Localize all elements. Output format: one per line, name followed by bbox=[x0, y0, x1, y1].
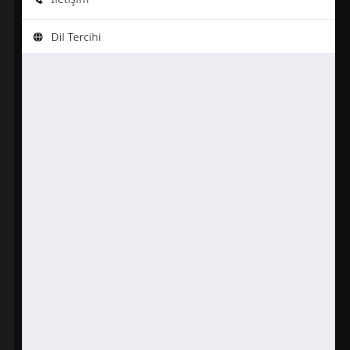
other: Language preference bbox=[33, 32, 43, 42]
button[interactable]: Contact bbox=[22, 0, 335, 19]
staticText: İletişim bbox=[51, 0, 89, 6]
other: Contact bbox=[33, 0, 43, 4]
button[interactable]: Language preference bbox=[22, 20, 335, 53]
staticText: Dil Tercihi bbox=[51, 29, 102, 44]
